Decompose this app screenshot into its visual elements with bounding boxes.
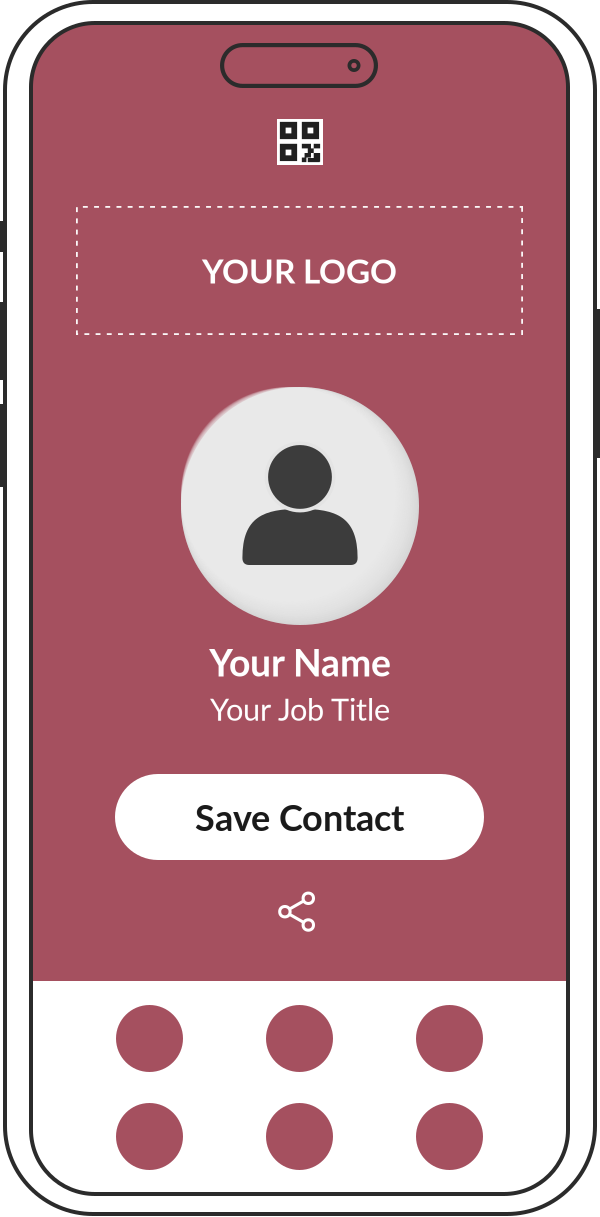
button[interactable]: Save Contact (115, 774, 484, 860)
button[interactable]: Social link (116, 1103, 183, 1170)
staticText: Your Name (209, 640, 391, 684)
staticText: Your Job Title (210, 691, 390, 727)
button[interactable]: Social link (416, 1103, 483, 1170)
button[interactable]: Social link (266, 1005, 333, 1072)
button[interactable]: Social link (416, 1005, 483, 1072)
button[interactable]: Social link (266, 1103, 333, 1170)
button[interactable]: Share (278, 891, 322, 935)
staticText: Save Contact (195, 795, 404, 839)
button[interactable]: Show QR code (277, 119, 323, 165)
staticText: YOUR LOGO (202, 250, 397, 290)
button[interactable]: Social link (116, 1005, 183, 1072)
